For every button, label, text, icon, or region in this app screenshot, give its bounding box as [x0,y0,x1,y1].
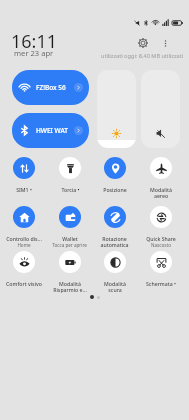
staticText: Posizione [103,186,127,193]
staticText: SIM1 • [16,186,32,193]
staticText: Schermata • [146,280,176,287]
staticText: Nascosto [151,242,171,248]
button[interactable]: HWEI WAT [12,113,89,148]
button[interactable]: Torcia • [46,157,93,201]
button[interactable]: Rotazione automatica [91,206,138,250]
button[interactable]: Controllo dis... [0,206,47,250]
button[interactable]: Wallet [46,206,93,250]
staticText: FZ!Box 56 [36,83,66,92]
button[interactable]: Modalità Risparmio e... [46,251,93,295]
staticText: Torcia • [61,186,80,193]
staticText: Modalità scura [104,280,126,293]
button[interactable]: Settings [134,34,152,52]
button[interactable]: Modalità aereo [137,157,184,201]
button[interactable]: Posizione [91,157,138,201]
staticText: Wallet [62,235,78,242]
button[interactable]: Volume [141,70,180,148]
button[interactable]: FZ!Box 56 [12,70,89,105]
staticText: mer 23 apr [14,48,54,58]
staticText: Comfort visivo [6,280,42,287]
button[interactable]: Modalità scura [91,251,138,295]
staticText: Modalità Risparmio e... [53,280,87,293]
staticText: Tocca per aprire [52,242,87,248]
staticText: HWEI WAT [36,126,68,135]
staticText: Home [17,242,31,248]
button[interactable]: Quick Share [137,206,184,250]
button[interactable]: Comfort visivo [0,251,47,295]
staticText: Modalità aereo [150,186,172,199]
button[interactable]: Schermata • [137,251,184,295]
staticText: 16:11 [11,29,58,54]
staticText: Quick Share [146,235,176,242]
button[interactable]: Brightness [97,70,136,148]
button[interactable]: SIM1 • [0,157,47,201]
button[interactable]: More options [156,34,174,52]
staticText: utilizzati oggi: 8,40 MB utilizzati [101,52,184,60]
staticText: Rotazione automatica [100,235,129,248]
staticText: Controllo dis... [6,235,42,242]
